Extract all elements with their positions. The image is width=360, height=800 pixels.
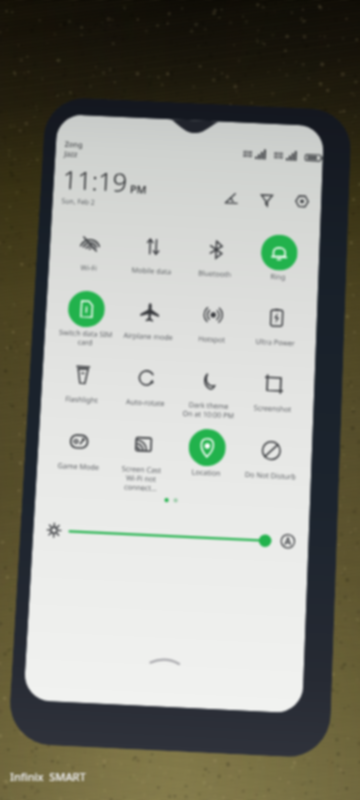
staticText: Ultra Power: [255, 336, 295, 348]
staticText: Airplane mode: [123, 330, 173, 342]
staticText: Wi-Fi: [80, 262, 97, 273]
button[interactable]: Hotspot: [179, 295, 245, 364]
staticText: Hotspot: [197, 333, 226, 344]
staticText: Zong: [64, 139, 84, 149]
staticText: Switch data SIM card: [58, 327, 113, 348]
button[interactable]: Flashlight: [49, 355, 115, 425]
staticText: Flashlight: [65, 393, 98, 405]
staticText: Auto-rotate: [126, 396, 165, 408]
staticText: Do Not Disturb: [244, 469, 296, 481]
staticText: 11:19: [62, 162, 128, 199]
button[interactable]: Switch data SIM card: [52, 289, 119, 358]
button[interactable]: Do Not Disturb: [237, 431, 304, 501]
button[interactable]: Screen Cast Wi-Fi not connect...: [108, 425, 176, 495]
button[interactable]: Edit: [220, 186, 242, 209]
button[interactable]: Bluetooth: [182, 230, 248, 298]
staticText: Ring: [270, 271, 286, 282]
staticText: Jazz: [64, 149, 78, 159]
button[interactable]: Dark theme On at 10:00 PM: [176, 361, 242, 431]
button[interactable]: Auto-rotate: [112, 358, 179, 428]
staticText: PM: [130, 181, 147, 197]
button[interactable]: Screenshot: [240, 364, 306, 434]
button[interactable]: Ring: [245, 233, 311, 301]
staticText: Location: [191, 466, 221, 478]
button[interactable]: Game Mode: [45, 422, 112, 492]
button[interactable]: Settings: [290, 190, 313, 212]
staticText: Game Mode: [57, 460, 99, 472]
staticText: Dark theme On at 10:00 PM: [182, 399, 235, 420]
button[interactable]: Ultra Power: [242, 298, 309, 367]
button[interactable]: Mobile data: [119, 227, 185, 295]
button[interactable]: Airplane mode: [115, 292, 182, 361]
staticText: Screenshot: [253, 402, 292, 414]
button[interactable]: Filter: [255, 188, 277, 210]
button[interactable]: Brightness slider: [69, 524, 272, 548]
staticText: Bluetooth: [198, 268, 232, 279]
staticText: Screen Cast Wi-Fi not connect...: [108, 463, 174, 494]
staticText: Mobile data: [131, 265, 171, 276]
staticText: Infinix SMART: [10, 769, 86, 784]
button[interactable]: Brightness: [44, 520, 64, 540]
staticText: Sun, Feb 2: [61, 196, 95, 208]
button[interactable]: Wi-Fi: [56, 224, 122, 292]
button[interactable]: Auto brightness: [278, 531, 298, 551]
button[interactable]: Location: [172, 428, 240, 498]
